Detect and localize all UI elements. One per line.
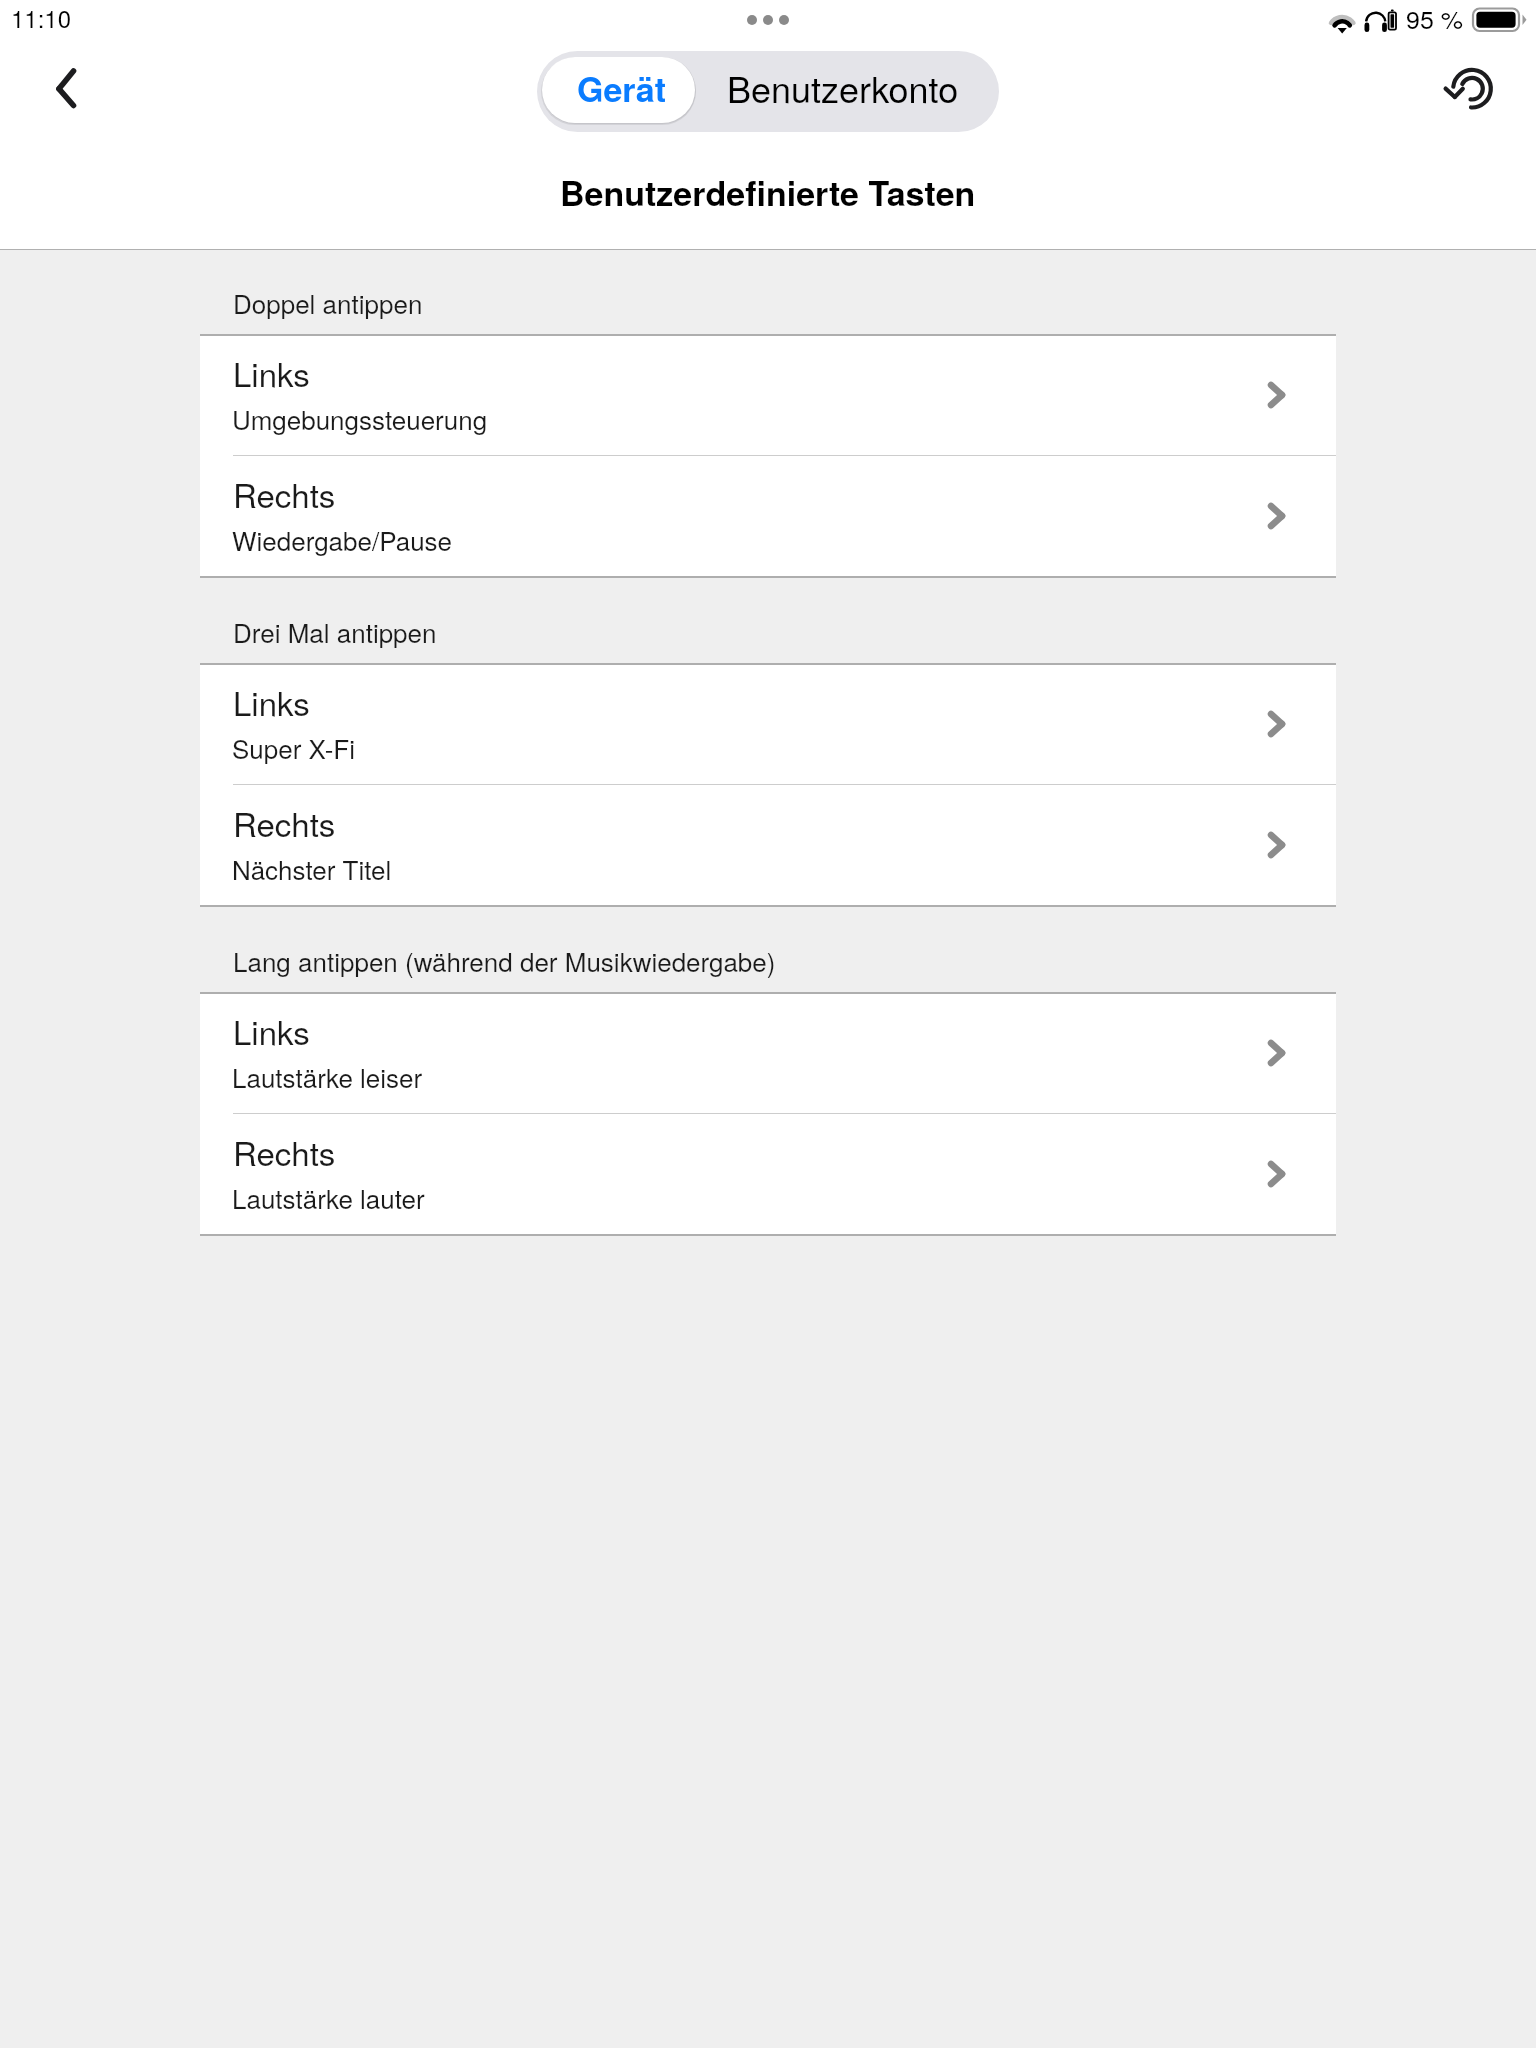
button[interactable]: Rechts xyxy=(200,455,1336,576)
staticText: 11:10 xyxy=(11,0,72,34)
staticText: Nächster Titel xyxy=(232,850,392,887)
staticText: Rechts xyxy=(233,470,336,517)
staticText: Super X-Fi xyxy=(232,729,355,766)
button[interactable]: Links xyxy=(200,992,1336,1113)
staticText: 95 % xyxy=(1406,0,1463,36)
staticText: Lang antippen (während der Musikwiederga… xyxy=(233,942,776,979)
staticText: Benutzerkonto xyxy=(727,62,959,114)
staticText: Drei Mal antippen xyxy=(233,613,437,650)
staticText: Benutzerdefinierte Tasten xyxy=(560,168,976,217)
button[interactable]: Links xyxy=(200,334,1336,455)
staticText: Links xyxy=(233,1007,310,1054)
button[interactable]: Benutzerkonto xyxy=(700,51,999,132)
button[interactable]: Links xyxy=(200,663,1336,784)
button[interactable]: Gerät xyxy=(537,51,700,132)
button[interactable]: Rechts xyxy=(200,784,1336,905)
staticText: Rechts xyxy=(233,799,336,846)
button[interactable]: Zurücksetzen xyxy=(1442,59,1502,119)
staticText: Links xyxy=(233,678,310,725)
staticText: Umgebungssteuerung xyxy=(232,400,488,437)
staticText: Links xyxy=(233,349,310,396)
staticText: Lautstärke leiser xyxy=(232,1058,423,1095)
staticText: Doppel antippen xyxy=(233,284,423,321)
staticText: Lautstärke lauter xyxy=(232,1179,425,1216)
button[interactable]: Rechts xyxy=(200,1113,1336,1234)
staticText: Gerät xyxy=(577,64,666,113)
button[interactable]: Zurück xyxy=(27,59,87,119)
staticText: Wiedergabe/Pause xyxy=(232,521,453,558)
staticText: Rechts xyxy=(233,1128,336,1175)
